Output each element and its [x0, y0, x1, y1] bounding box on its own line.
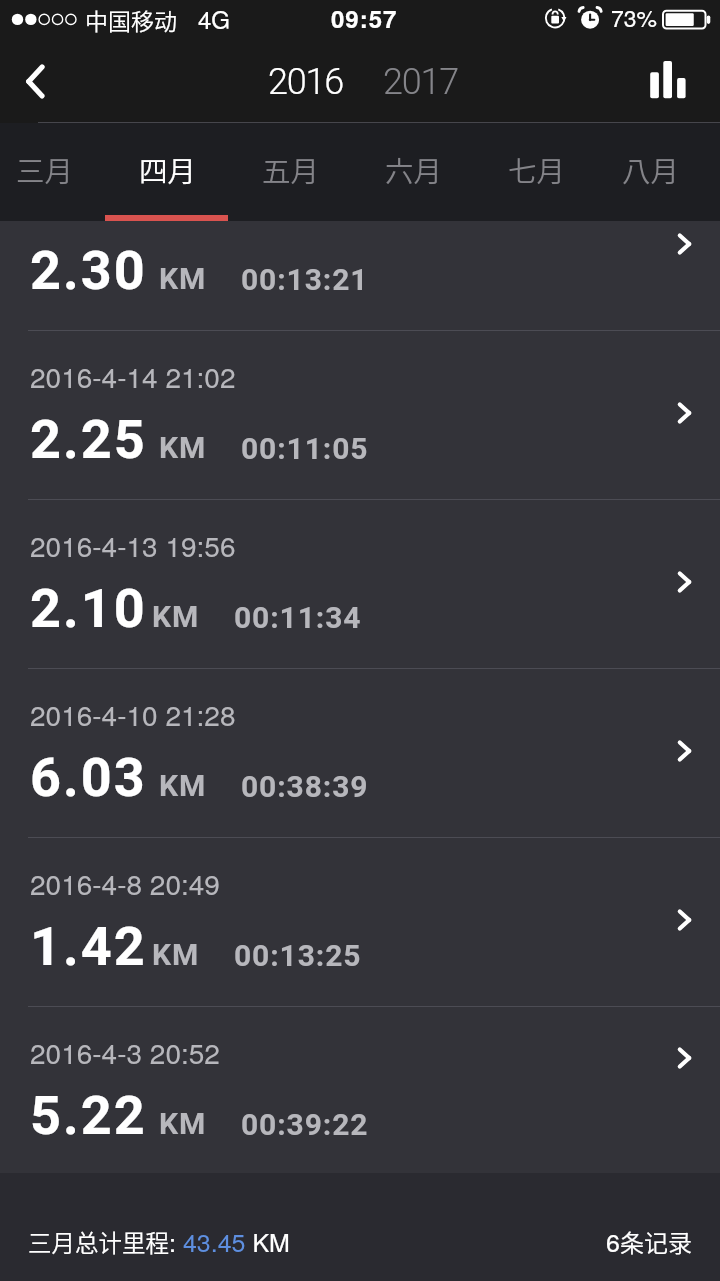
- button[interactable]: 五月: [229, 123, 352, 221]
- staticText: 2016-4-13 19:56: [30, 525, 236, 565]
- staticText: 2.25: [30, 408, 147, 471]
- button[interactable]: 2016-4-13 19:56: [0, 499, 720, 668]
- staticText: 四月: [139, 149, 197, 190]
- staticText: KM: [159, 1106, 207, 1141]
- button[interactable]: 七月: [475, 123, 598, 221]
- staticText: 2016-4-14 21:02: [30, 356, 236, 396]
- staticText: 73%: [611, 1, 658, 34]
- staticText: 00:39:22: [241, 1107, 369, 1142]
- staticText: 00:11:05: [241, 431, 369, 466]
- staticText: KM: [152, 599, 200, 634]
- staticText: 2016-4-8 20:49: [30, 863, 220, 903]
- button[interactable]: 2016-4-8 20:49: [0, 837, 720, 1006]
- staticText: 5.22: [30, 1084, 147, 1147]
- staticText: 00:38:39: [241, 769, 369, 804]
- staticText: 6.03: [30, 746, 147, 809]
- staticText: 2016-4-10 21:28: [30, 694, 236, 734]
- staticText: 三月: [16, 149, 74, 190]
- button[interactable]: 2016-4-15 20:13: [0, 221, 720, 330]
- staticText: 09:57: [331, 1, 398, 35]
- button[interactable]: 八月: [598, 123, 703, 221]
- staticText: 2016-4-3 20:52: [30, 1032, 220, 1072]
- staticText: 三月总计里程: 43.45 KM: [28, 1223, 290, 1259]
- staticText: 七月: [508, 149, 566, 190]
- button[interactable]: 2016-4-14 21:02: [0, 330, 720, 499]
- staticText: 00:13:25: [234, 938, 362, 973]
- staticText: 00:11:34: [234, 600, 362, 635]
- button[interactable]: Back: [0, 42, 80, 122]
- staticText: 2016: [268, 61, 344, 103]
- staticText: KM: [159, 768, 207, 803]
- staticText: 六月: [385, 149, 443, 190]
- button[interactable]: 四月: [106, 123, 229, 221]
- staticText: KM: [159, 430, 207, 465]
- staticText: 五月: [262, 149, 320, 190]
- button[interactable]: 2017: [375, 61, 467, 103]
- button[interactable]: 六月: [352, 123, 475, 221]
- button[interactable]: 2016-4-10 21:28: [0, 668, 720, 837]
- staticText: 6条记录: [606, 1223, 692, 1259]
- staticText: 2017: [383, 61, 459, 103]
- staticText: KM: [152, 937, 200, 972]
- button[interactable]: Statistics: [640, 42, 720, 122]
- staticText: 八月: [622, 149, 680, 190]
- staticText: 2.10: [30, 577, 147, 640]
- staticText: 00:13:21: [241, 262, 369, 297]
- button[interactable]: 2016-4-3 20:52: [0, 1006, 720, 1113]
- button[interactable]: 2016: [260, 61, 352, 103]
- staticText: KM: [159, 261, 207, 296]
- button[interactable]: 三月: [0, 123, 106, 221]
- staticText: 4G: [198, 1, 231, 35]
- staticText: 中国移动: [85, 3, 177, 36]
- staticText: 1.42: [30, 915, 147, 978]
- staticText: 2.30: [30, 239, 147, 302]
